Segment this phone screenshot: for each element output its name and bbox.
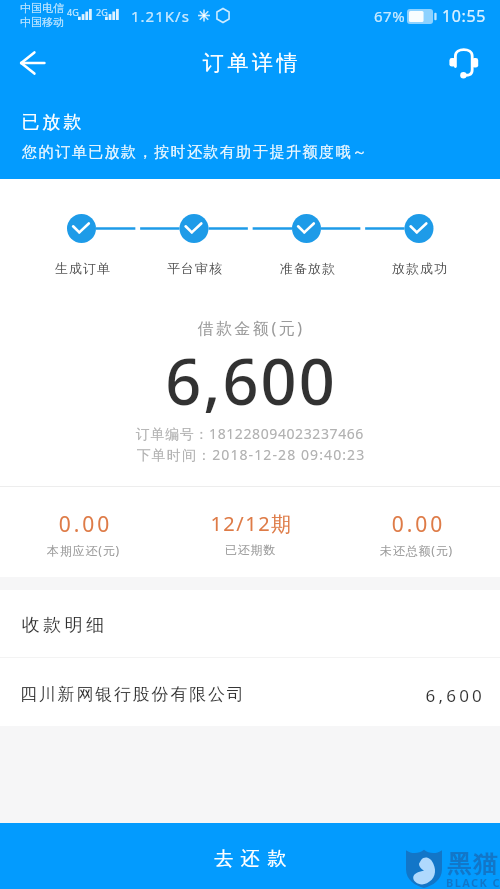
staticText: 12/12期 — [168, 510, 335, 537]
staticText: 准备放款 — [268, 260, 348, 276]
staticText: 放款成功 — [380, 260, 460, 276]
staticText: 已放款 — [20, 111, 83, 134]
staticText: 0.00 — [335, 510, 500, 539]
staticText: 未还总额(元) — [333, 542, 500, 558]
staticText: 10:55 — [442, 5, 486, 27]
staticText: 0.00 — [2, 510, 169, 539]
staticText: 已还期数 — [167, 542, 334, 557]
staticText: 中国电信 — [20, 1, 64, 15]
staticText: 借款金额(元) — [1, 317, 500, 339]
button[interactable]: Customer service — [442, 41, 486, 85]
staticText: 去还款 — [4, 847, 500, 871]
staticText: 4G — [67, 6, 79, 18]
staticText: 中国移动 — [20, 15, 64, 29]
staticText: 四川新网银行股份有限公司 — [20, 684, 246, 705]
staticText: 订单编号：181228094023237466 — [0, 424, 500, 443]
staticText: 黑猫 — [446, 849, 498, 879]
staticText: 平台审核 — [155, 260, 235, 276]
staticText: 生成订单 — [43, 260, 123, 276]
staticText: 6,600 — [0, 684, 485, 707]
staticText: BLACK CAT — [446, 875, 500, 889]
staticText: 67% — [374, 6, 406, 26]
staticText: 2G — [96, 6, 108, 18]
button[interactable]: 去还款 — [0, 823, 500, 889]
staticText: 您的订单已放款，按时还款有助于提升额度哦～ — [22, 143, 369, 162]
staticText: 收款明细 — [20, 614, 106, 637]
staticText: 下单时间：2018-12-28 09:40:23 — [1, 445, 500, 464]
button[interactable]: Back — [9, 41, 53, 85]
staticText: 6,600 — [1, 338, 500, 424]
staticText: 订单详情 — [2, 50, 500, 76]
staticText: 本期应还(元) — [0, 542, 167, 558]
staticText: 1.21K/s — [131, 6, 190, 26]
